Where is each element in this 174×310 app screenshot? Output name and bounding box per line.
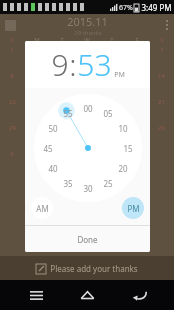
button[interactable]: Menu — [20, 280, 52, 310]
staticText: 45 — [43, 143, 53, 154]
staticText: 9 — [51, 44, 69, 85]
staticText: 28 — [158, 124, 165, 132]
staticText: M — [34, 36, 40, 44]
staticText: 29 thanks — [74, 29, 102, 36]
staticText: PM — [127, 203, 140, 214]
button[interactable]: More options — [166, 20, 168, 30]
staticText: 15 — [123, 143, 133, 154]
staticText: 8 — [10, 72, 14, 80]
staticText: S — [160, 36, 164, 44]
staticText: 30 — [83, 183, 93, 194]
staticText: 21 — [158, 98, 165, 106]
staticText: W — [84, 36, 90, 44]
staticText: 2015.11 — [67, 14, 108, 29]
staticText: 6 — [10, 150, 14, 158]
staticText: 00 — [83, 103, 93, 114]
staticText: 55 — [63, 108, 73, 119]
staticText: 40 — [48, 163, 58, 174]
staticText: 20 — [118, 163, 128, 174]
staticText: AM — [36, 203, 49, 214]
staticText: Please add your thanks — [50, 263, 138, 274]
button[interactable]: PM — [122, 197, 144, 219]
staticText: PM — [114, 70, 125, 80]
button[interactable]: Back — [123, 280, 155, 310]
staticText: T — [110, 36, 114, 44]
staticText: 3:49 PM — [141, 2, 172, 13]
button[interactable]: AM — [31, 197, 53, 219]
staticText: 25 — [103, 178, 113, 189]
staticText: 35 — [63, 178, 73, 189]
staticText: : — [69, 44, 77, 85]
staticText: 10 — [118, 123, 128, 134]
button[interactable]: Done — [25, 226, 150, 252]
staticText: Done — [77, 234, 98, 245]
staticText: 53 — [77, 44, 112, 85]
staticText: 22 — [9, 98, 16, 106]
staticText: 67% — [119, 3, 133, 13]
staticText: 1 — [10, 46, 14, 54]
staticText: 7 — [160, 46, 164, 54]
staticText: 05 — [103, 108, 113, 119]
staticText: S — [10, 36, 14, 44]
staticText: 14 — [158, 72, 165, 80]
staticText: 50 — [48, 123, 58, 134]
button[interactable]: Home — [71, 280, 103, 310]
staticText: T — [60, 36, 64, 44]
staticText: F — [135, 36, 139, 44]
staticText: 29 — [9, 124, 16, 132]
